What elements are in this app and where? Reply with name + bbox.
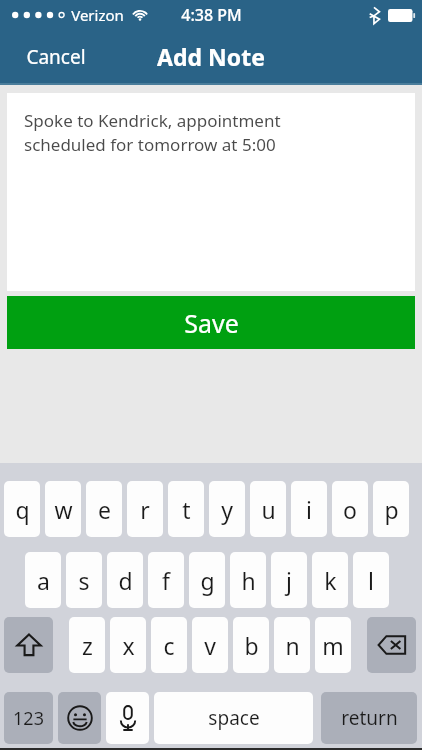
staticText: return: [341, 705, 398, 731]
staticText: n: [285, 630, 300, 661]
staticText: Verizon: [71, 5, 124, 25]
staticText: h: [241, 565, 256, 596]
button[interactable]: p: [373, 481, 409, 537]
staticText: q: [15, 494, 30, 525]
button[interactable]: return: [321, 692, 417, 744]
staticText: w: [54, 494, 73, 525]
button[interactable]: k: [312, 552, 348, 608]
button[interactable]: o: [332, 481, 368, 537]
button[interactable]: Save: [7, 296, 415, 349]
staticText: g: [200, 565, 215, 596]
staticText: l: [368, 565, 374, 596]
staticText: t: [182, 494, 191, 525]
button[interactable]: j: [271, 552, 307, 608]
staticText: z: [82, 630, 93, 661]
button[interactable]: f: [148, 552, 184, 608]
staticText: Save: [184, 306, 239, 340]
staticText: v: [204, 630, 216, 661]
button[interactable]: c: [151, 617, 187, 673]
staticText: p: [384, 494, 399, 525]
staticText: i: [306, 494, 312, 525]
button[interactable]: space: [154, 692, 313, 744]
staticText: o: [343, 494, 357, 525]
staticText: s: [78, 565, 90, 596]
button[interactable]: Shift: [4, 617, 53, 673]
button[interactable]: i: [291, 481, 327, 537]
staticText: x: [122, 630, 135, 661]
button[interactable]: q: [4, 481, 40, 537]
button[interactable]: r: [127, 481, 163, 537]
button[interactable]: g: [189, 552, 225, 608]
button[interactable]: v: [192, 617, 228, 673]
staticText: f: [162, 565, 170, 596]
button[interactable]: x: [110, 617, 146, 673]
staticText: d: [118, 565, 133, 596]
staticText: Cancel: [26, 44, 86, 70]
staticText: e: [98, 494, 111, 525]
staticText: 123: [13, 706, 44, 731]
button[interactable]: u: [250, 481, 286, 537]
button[interactable]: Spoke to Kendrick, appointment scheduled…: [7, 93, 415, 291]
button[interactable]: d: [107, 552, 143, 608]
staticText: space: [208, 705, 260, 731]
button[interactable]: s: [66, 552, 102, 608]
button[interactable]: b: [233, 617, 269, 673]
staticText: y: [221, 494, 233, 525]
button[interactable]: m: [315, 617, 351, 673]
staticText: k: [324, 565, 337, 596]
button[interactable]: Cancel: [16, 38, 96, 76]
button[interactable]: y: [209, 481, 245, 537]
button[interactable]: Dictation: [106, 692, 149, 744]
button[interactable]: l: [353, 552, 389, 608]
button[interactable]: Backspace: [367, 617, 416, 673]
button[interactable]: 123: [4, 692, 53, 744]
button[interactable]: w: [45, 481, 81, 537]
staticText: c: [163, 630, 175, 661]
staticText: 4:38 PM: [181, 4, 242, 26]
button[interactable]: Emoji: [58, 692, 101, 744]
staticText: u: [261, 494, 276, 525]
button[interactable]: t: [168, 481, 204, 537]
staticText: j: [286, 565, 292, 596]
staticText: r: [140, 494, 150, 525]
staticText: m: [322, 630, 344, 661]
staticText: b: [244, 630, 259, 661]
staticText: Add Note: [157, 41, 265, 72]
button[interactable]: n: [274, 617, 310, 673]
button[interactable]: e: [86, 481, 122, 537]
button[interactable]: a: [25, 552, 61, 608]
button[interactable]: z: [69, 617, 105, 673]
staticText: Spoke to Kendrick, appointment scheduled…: [24, 109, 281, 156]
button[interactable]: h: [230, 552, 266, 608]
staticText: a: [37, 565, 50, 596]
